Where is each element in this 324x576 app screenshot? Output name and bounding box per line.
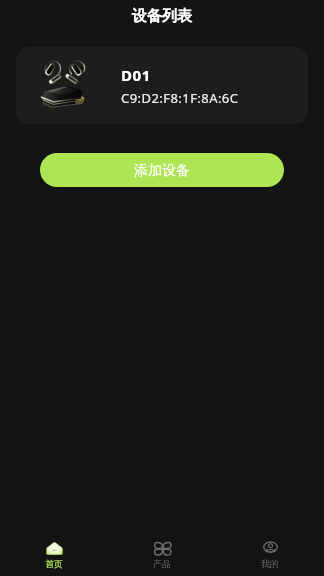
staticText: D01	[121, 65, 151, 85]
button[interactable]: D01	[16, 47, 308, 124]
staticText: C9:D2:F8:1F:8A:6C	[121, 89, 239, 107]
staticText: 添加设备	[134, 162, 190, 180]
staticText: 设备列表	[132, 7, 192, 26]
staticText: 我的	[261, 558, 279, 569]
button[interactable]: 产品	[108, 534, 216, 576]
button[interactable]: 我的	[216, 534, 324, 576]
button[interactable]: 首页	[0, 534, 108, 576]
staticText: 首页	[45, 558, 63, 569]
button[interactable]: 添加设备	[40, 153, 284, 187]
staticText: 产品	[153, 558, 171, 569]
